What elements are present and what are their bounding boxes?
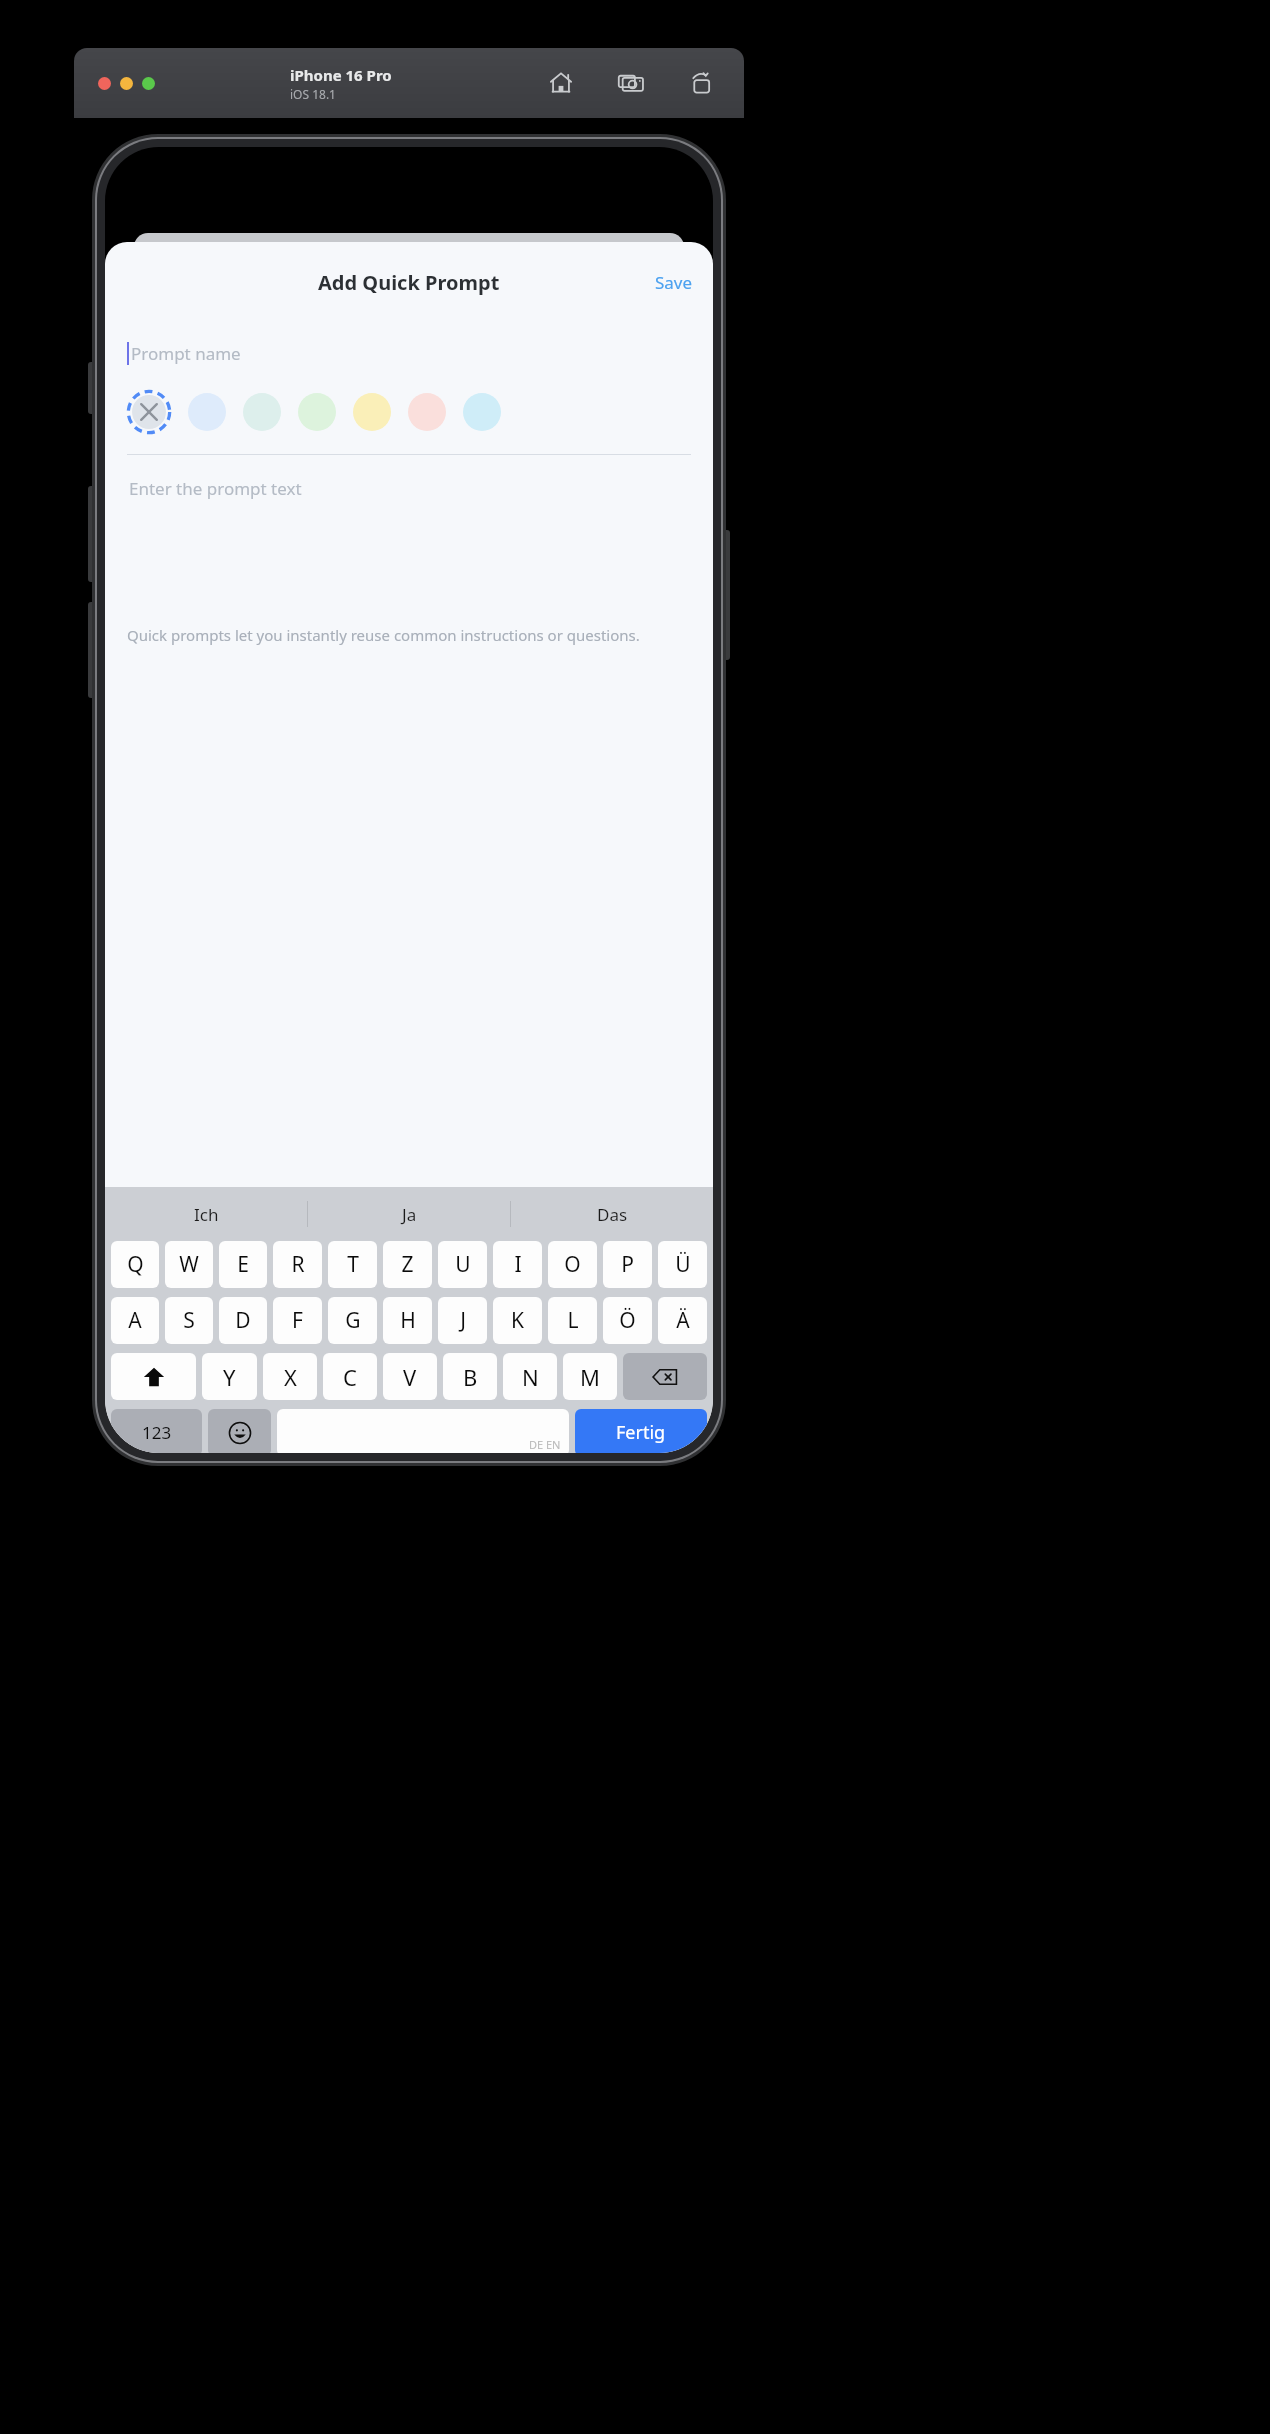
button[interactable]: Screenshot [614, 66, 648, 100]
staticText: Das [597, 1203, 628, 1226]
staticText: J [460, 1306, 466, 1335]
button[interactable]: Close [98, 77, 111, 90]
button[interactable]: Colour [243, 393, 281, 431]
staticText: V [403, 1362, 417, 1392]
button[interactable]: Maximize [142, 77, 155, 90]
staticText: Save [655, 271, 693, 294]
button[interactable]: T [328, 1241, 377, 1288]
button[interactable]: Prompt name [127, 338, 713, 368]
button[interactable]: F [273, 1297, 322, 1344]
button[interactable]: K [493, 1297, 542, 1344]
staticText: Prompt name [131, 342, 241, 365]
button[interactable]: 123 [111, 1409, 202, 1453]
staticText: T [347, 1250, 359, 1279]
staticText: Ä [676, 1306, 690, 1335]
button[interactable]: No colour [127, 390, 171, 434]
button[interactable]: Ö [603, 1297, 652, 1344]
button[interactable]: D [219, 1297, 267, 1344]
staticText: iPhone 16 Pro [290, 65, 392, 85]
button[interactable]: P [603, 1241, 652, 1288]
staticText: Fertig [616, 1420, 666, 1445]
button[interactable]: O [548, 1241, 597, 1288]
staticText: iOS 18.1 [290, 86, 336, 102]
staticText: 123 [142, 1421, 172, 1444]
staticText: DE EN [529, 1437, 561, 1452]
button[interactable]: V [383, 1353, 437, 1400]
button[interactable]: H [383, 1297, 432, 1344]
button[interactable]: I [493, 1241, 542, 1288]
button[interactable]: E [219, 1241, 267, 1288]
staticText: Q [127, 1250, 144, 1279]
button[interactable]: X [263, 1353, 317, 1400]
button[interactable]: Colour [353, 393, 391, 431]
button[interactable]: Home [544, 66, 578, 100]
button[interactable]: Colour [188, 393, 226, 431]
staticText: N [522, 1362, 539, 1392]
staticText: M [580, 1362, 600, 1392]
staticText: Y [223, 1362, 236, 1392]
staticText: Ü [675, 1250, 691, 1279]
staticText: H [400, 1306, 416, 1335]
button[interactable]: Colour [408, 393, 446, 431]
staticText: Quick prompts let you instantly reuse co… [127, 625, 691, 645]
staticText: L [567, 1306, 579, 1335]
staticText: F [292, 1306, 303, 1335]
staticText: I [514, 1250, 522, 1279]
button[interactable]: S [165, 1297, 213, 1344]
staticText: X [284, 1362, 297, 1392]
staticText: P [621, 1250, 634, 1279]
staticText: S [183, 1306, 195, 1335]
button[interactable]: Shift [111, 1353, 196, 1400]
button[interactable]: L [548, 1297, 597, 1344]
button[interactable]: J [438, 1297, 487, 1344]
staticText: W [179, 1250, 199, 1279]
staticText: Ja [402, 1203, 417, 1226]
button[interactable]: Colour [463, 393, 501, 431]
button[interactable]: Ich [105, 1187, 307, 1241]
button[interactable]: Emoji [208, 1409, 271, 1453]
staticText: E [237, 1250, 249, 1279]
staticText: C [343, 1362, 357, 1392]
staticText: Add Quick Prompt [318, 269, 500, 296]
button[interactable]: Ja [308, 1187, 510, 1241]
staticText: A [128, 1306, 142, 1335]
button[interactable]: Colour [298, 393, 336, 431]
button[interactable]: G [328, 1297, 377, 1344]
button[interactable]: A [111, 1297, 159, 1344]
button[interactable]: M [563, 1353, 617, 1400]
button[interactable]: U [438, 1241, 487, 1288]
staticText: Enter the prompt text [129, 477, 302, 500]
button[interactable]: W [165, 1241, 213, 1288]
button[interactable]: Z [383, 1241, 432, 1288]
staticText: R [291, 1250, 305, 1279]
button[interactable]: Y [202, 1353, 257, 1400]
staticText: Z [401, 1250, 414, 1279]
staticText: Ich [194, 1203, 219, 1226]
button[interactable]: B [443, 1353, 497, 1400]
staticText: U [455, 1250, 471, 1279]
button[interactable]: Ä [658, 1297, 707, 1344]
staticText: O [564, 1250, 581, 1279]
staticText: Ö [619, 1306, 636, 1335]
button[interactable]: Das [511, 1187, 713, 1241]
button[interactable]: Record screen [684, 66, 718, 100]
button[interactable]: Fertig [575, 1409, 707, 1453]
button[interactable]: Q [111, 1241, 159, 1288]
button[interactable]: Minimize [120, 77, 133, 90]
button[interactable]: R [273, 1241, 322, 1288]
button[interactable]: Ü [658, 1241, 707, 1288]
staticText: D [235, 1306, 251, 1335]
button[interactable]: Enter the prompt text [129, 477, 689, 597]
button[interactable]: C [323, 1353, 377, 1400]
staticText: B [463, 1362, 478, 1392]
button[interactable]: Backspace [623, 1353, 707, 1400]
button[interactable]: Save [647, 265, 701, 300]
staticText: K [511, 1306, 524, 1335]
button[interactable]: N [503, 1353, 557, 1400]
button[interactable]: Space [277, 1409, 569, 1453]
staticText: G [345, 1306, 361, 1335]
